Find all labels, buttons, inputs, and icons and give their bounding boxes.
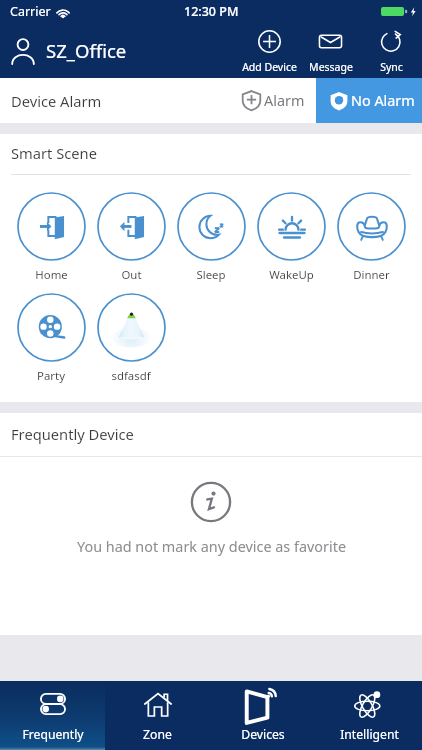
staticText: Add Device	[242, 60, 297, 74]
button[interactable]: Party	[11, 293, 91, 384]
staticText: You had not mark any device as favorite	[77, 537, 346, 557]
staticText: sdfasdf	[111, 368, 151, 384]
staticText: Device Alarm	[11, 91, 102, 111]
button[interactable]: Frequently	[0, 681, 105, 750]
button[interactable]: Alarm	[228, 78, 316, 123]
staticText: Sleep	[196, 267, 226, 283]
staticText: Frequently Device	[11, 424, 134, 444]
staticText: Carrier	[10, 3, 51, 20]
button[interactable]: sdfasdf	[91, 293, 171, 384]
button[interactable]: Out	[91, 192, 171, 283]
staticText: Message	[309, 60, 353, 74]
staticText: SZ_Office	[46, 38, 127, 63]
button[interactable]: Message	[300, 22, 361, 78]
staticText: Smart Scene	[11, 143, 97, 163]
staticText: Out	[121, 267, 142, 283]
staticText: Devices	[241, 726, 285, 743]
button[interactable]: Devices	[210, 681, 316, 750]
staticText: Frequently	[22, 726, 84, 743]
button[interactable]: SZ_Office	[0, 22, 135, 78]
staticText: Zone	[143, 726, 172, 743]
staticText: Sync	[380, 60, 403, 74]
button[interactable]: Sync	[361, 22, 422, 78]
staticText: Dinner	[353, 267, 390, 283]
button[interactable]: Zone	[105, 681, 210, 750]
button[interactable]: Add Device	[239, 22, 300, 78]
button[interactable]: WakeUp	[251, 192, 331, 283]
staticText: 12:30 PM	[184, 3, 239, 20]
button[interactable]: No Alarm	[316, 78, 422, 123]
button[interactable]: Home	[11, 192, 91, 283]
staticText: Alarm	[264, 91, 305, 111]
staticText: Home	[35, 267, 68, 283]
staticText: Intelligent	[340, 726, 399, 743]
staticText: No Alarm	[351, 91, 415, 111]
staticText: Party	[37, 368, 65, 384]
button[interactable]: Sleep	[171, 192, 251, 283]
staticText: WakeUp	[269, 267, 314, 283]
button[interactable]: Dinner	[331, 192, 411, 283]
button[interactable]: Intelligent	[316, 681, 422, 750]
